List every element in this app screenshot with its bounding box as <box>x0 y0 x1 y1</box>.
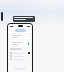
button[interactable] <box>10 55 30 57</box>
button[interactable] <box>10 52 30 54</box>
button[interactable]: Search <box>15 29 26 32</box>
button[interactable] <box>10 41 30 46</box>
button[interactable] <box>10 34 30 39</box>
button[interactable] <box>13 16 35 22</box>
button[interactable] <box>10 58 30 60</box>
